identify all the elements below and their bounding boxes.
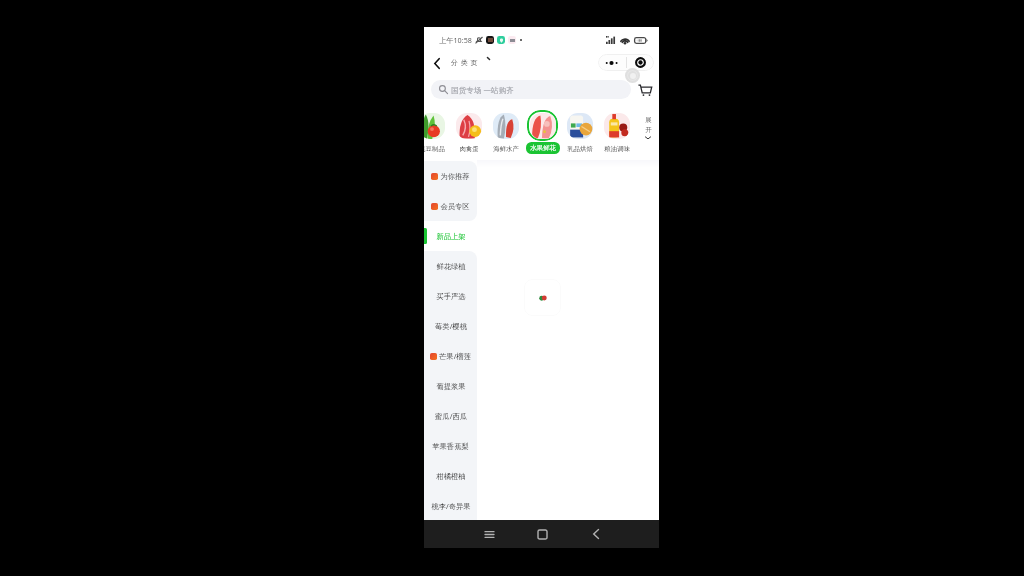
button[interactable]: 芒果/榴莲 [424,341,477,371]
staticText: 粮油调味 [604,145,630,153]
button[interactable]: 柑橘橙柚 [424,461,477,491]
staticText: 莓类/樱桃 [435,321,467,331]
staticText: 桃李/奇异果 [431,501,471,511]
button[interactable]: 水果鲜花 [524,99,561,160]
button[interactable]: 鲜花绿植 [424,251,477,281]
button[interactable]: 蜜瓜/西瓜 [424,401,477,431]
staticText: 买手严选 [436,292,466,301]
button[interactable]: 买手严选 [424,281,477,311]
staticText: 乳品烘焙 [567,145,593,153]
staticText: 新品上架 [436,232,466,241]
button[interactable]: Recent apps [472,520,507,548]
staticText: 苹果香蕉梨 [432,442,469,451]
staticText: 分类页 [451,58,481,67]
staticText: 水果鲜花 [530,144,556,152]
button[interactable]: Assistive touch [625,68,640,83]
staticText: 鲜花绿植 [436,262,466,271]
button[interactable]: 海鲜水产 [487,99,524,160]
staticText: 上午10:58 [439,35,472,45]
button[interactable]: More options [598,54,626,71]
button[interactable]: 蔬豆制品 [424,99,450,160]
button[interactable]: 会员专区 [424,191,477,221]
button[interactable]: 乳品烘焙 [561,99,598,160]
button[interactable]: 葡提浆果 [424,371,477,401]
staticText: 芒果/榴莲 [439,351,471,361]
staticText: 肉禽蛋 [459,145,479,153]
staticText: 会员专区 [440,202,470,211]
staticText: 柑橘橙柚 [436,472,466,481]
staticText: 国货专场 一站购齐 [451,85,514,95]
staticText: 葡提浆果 [436,382,466,391]
staticText: 海鲜水产 [493,145,519,153]
button[interactable]: 苹果香蕉梨 [424,431,477,461]
button[interactable]: Back [578,520,613,548]
button[interactable]: Shopping cart [636,81,654,99]
staticText: 蔬豆制品 [424,145,445,153]
button[interactable]: 粮油调味 [598,99,635,160]
button[interactable]: 展 [640,116,656,140]
staticText: 展 [645,116,652,124]
button[interactable]: 为你推荐 [424,161,477,191]
staticText: 蜜瓜/西瓜 [435,411,467,421]
button[interactable]: 新品上架 [424,221,477,251]
button[interactable]: 国货专场 一站购齐 [431,80,631,99]
staticText: 开 [645,126,652,134]
button[interactable]: 桃李/奇异果 [424,491,477,521]
button[interactable]: Back [428,54,446,72]
button[interactable]: Home [525,520,560,548]
button[interactable]: Close mini program [627,54,654,71]
button[interactable]: 肉禽蛋 [450,99,487,160]
staticText: 为你推荐 [440,172,470,181]
button[interactable]: 莓类/樱桃 [424,311,477,341]
